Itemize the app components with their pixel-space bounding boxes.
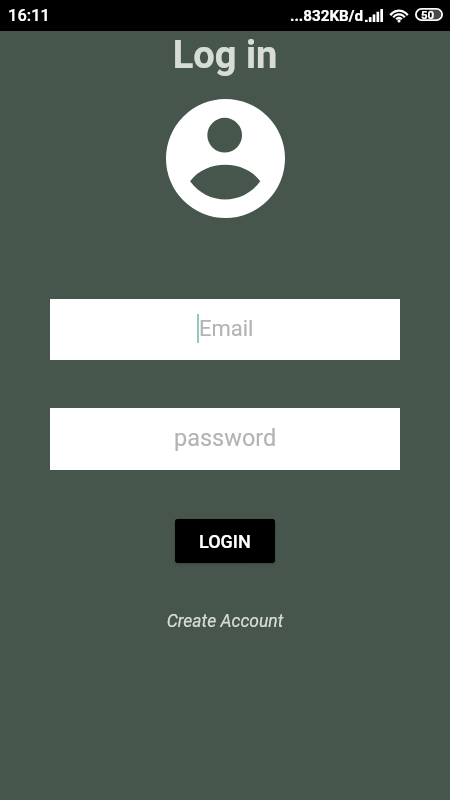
- staticText: 50: [421, 8, 435, 21]
- button[interactable]: password: [50, 408, 400, 470]
- button[interactable]: Email: [50, 299, 400, 360]
- staticText: 16:11: [8, 6, 50, 25]
- button[interactable]: Create Account: [0, 611, 450, 632]
- staticText: password: [174, 424, 277, 452]
- other: Profile avatar: [166, 99, 285, 218]
- staticText: ...832KB/d: [290, 7, 363, 25]
- staticText: Email: [199, 316, 254, 342]
- button[interactable]: LOGIN: [175, 519, 275, 563]
- staticText: Log in: [0, 33, 450, 78]
- staticText: LOGIN: [199, 531, 251, 552]
